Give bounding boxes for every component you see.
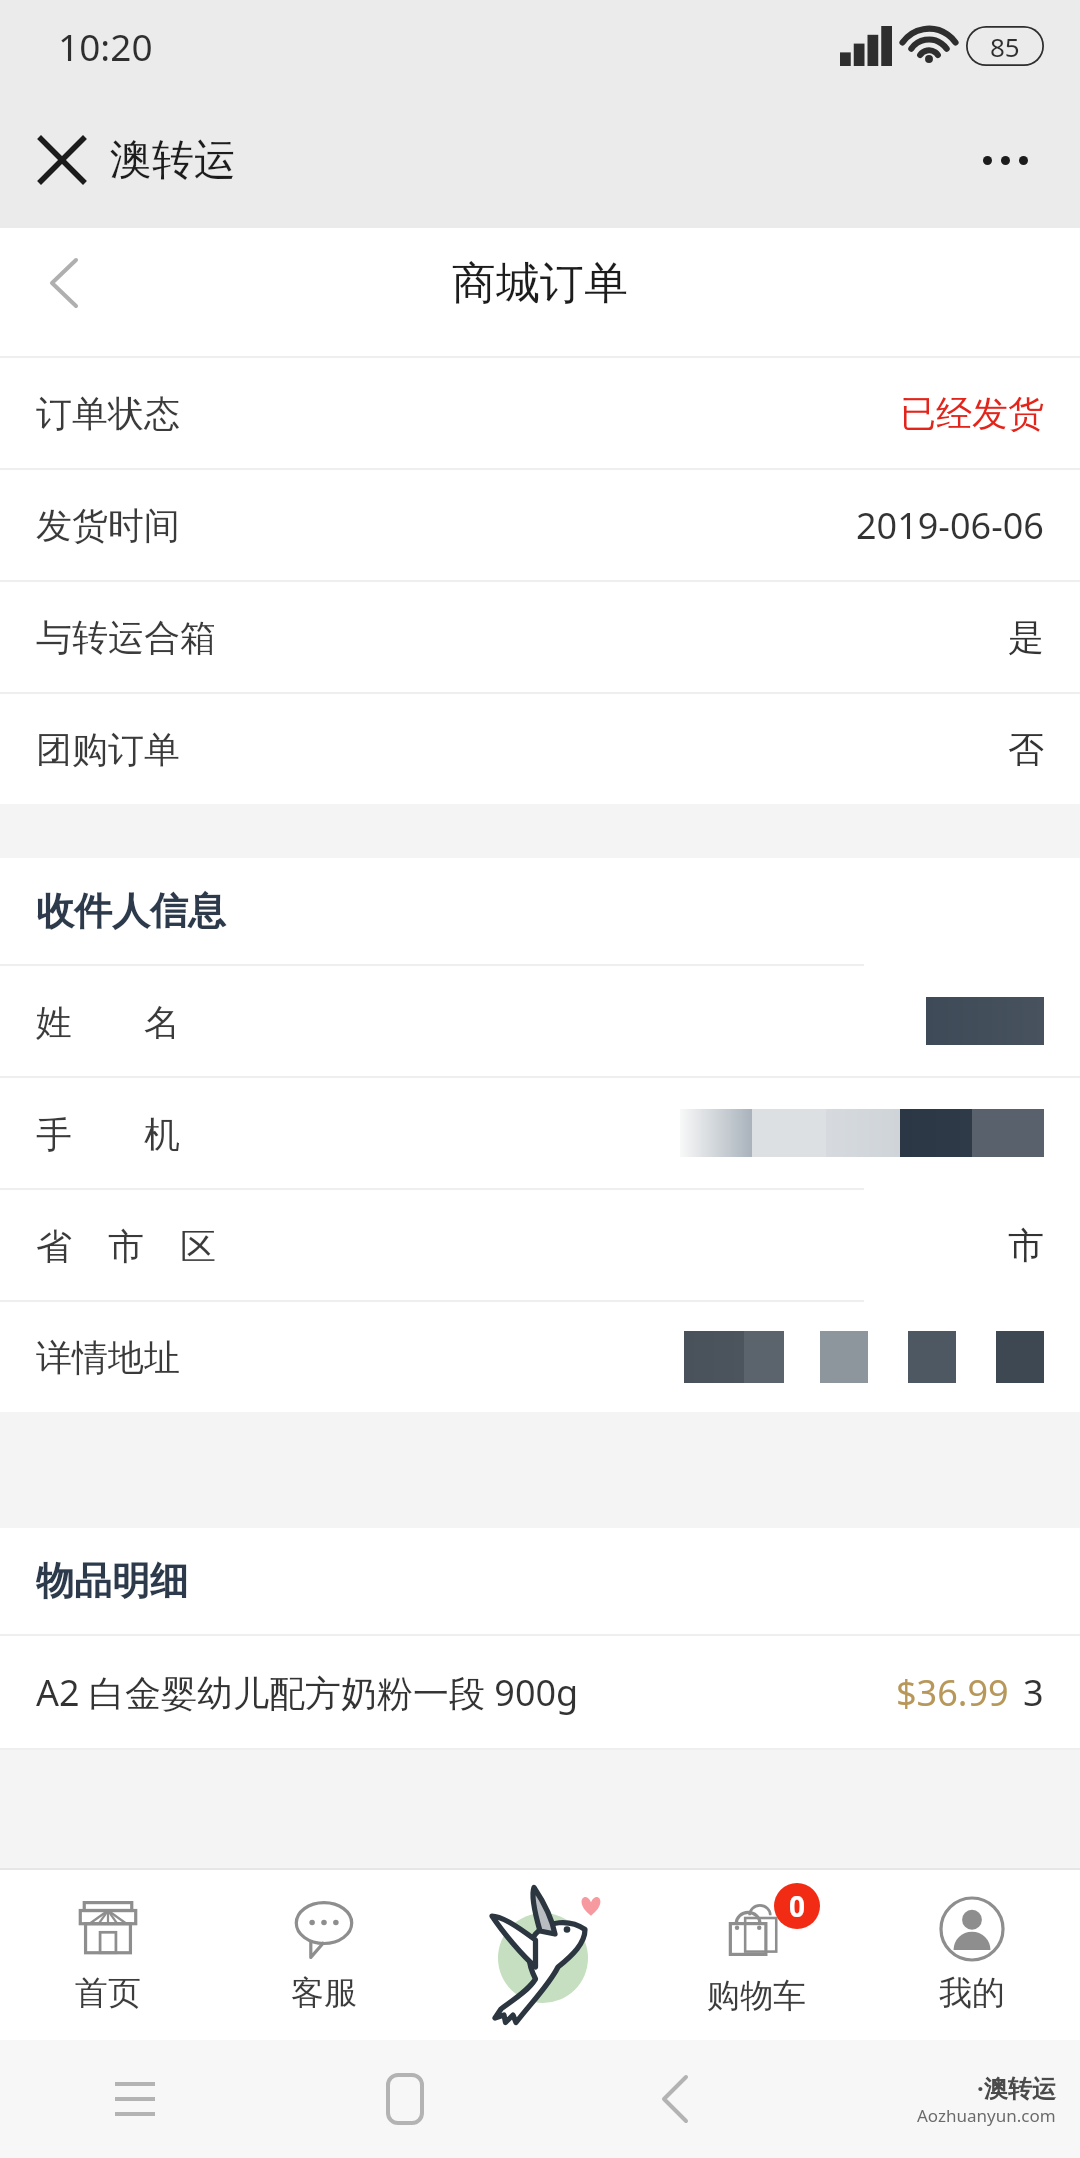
staticText: 客服 [291,1972,357,2014]
button[interactable]: Home [373,2067,437,2131]
staticText: 首页 [75,1972,141,2014]
button[interactable]: 团购订单 [36,694,1044,804]
button[interactable]: Back [643,2067,707,2131]
staticText: 姓 名 [36,997,180,1046]
button[interactable]: More options [960,115,1050,205]
staticText: 与转运合箱 [36,615,216,660]
staticText: 物品明细 [36,1557,188,1605]
button[interactable]: Close [22,120,102,200]
staticText: $36.99 [896,1668,1009,1717]
button[interactable]: 物品明细 [0,1528,1080,1634]
staticText: 发货时间 [36,503,180,548]
staticText: ·澳转运 [977,2071,1056,2104]
button[interactable]: 姓 名 [36,966,1044,1076]
staticText: 85 [990,29,1020,64]
staticText: 团购订单 [36,727,180,772]
staticText: 10:20 [58,21,153,71]
button[interactable]: 发货时间 [36,470,1044,580]
button[interactable]: 详情地址 [36,1302,1044,1412]
button[interactable]: 澳转运 [432,1870,648,2040]
staticText: 2019-06-06 [856,501,1044,550]
staticText: 0 [789,1887,806,1925]
staticText: 我的 [939,1972,1005,2014]
button[interactable]: 手 机 [36,1078,1044,1188]
button[interactable]: 订单状态 [36,358,1044,468]
staticText: 否 [1008,727,1044,772]
button[interactable]: 首页 [0,1870,216,2040]
staticText: 购物车 [707,1975,806,2017]
staticText: 收件人信息 [36,887,226,935]
button[interactable]: 我的 [864,1870,1080,2040]
button[interactable]: 收件人信息 [0,858,1080,964]
button[interactable]: 0 [648,1870,864,2040]
button[interactable]: A2 白金婴幼儿配方奶粉一段 900g [36,1636,1044,1748]
staticText: 已经发货 [900,391,1044,436]
staticText: 市 [1008,1223,1044,1268]
staticText: 省 市 区 [36,1221,216,1270]
button[interactable]: 客服 [216,1870,432,2040]
button[interactable]: Recents [103,2067,167,2131]
staticText: 商城订单 [452,256,628,311]
staticText: 3 [1023,1668,1044,1717]
staticText: 是 [1008,615,1044,660]
staticText: Aozhuanyun.com [917,2104,1056,2127]
staticText: 澳转运 [110,134,236,187]
staticText: 订单状态 [36,391,180,436]
button[interactable]: Back [26,245,102,321]
button[interactable]: 与转运合箱 [36,582,1044,692]
staticText: A2 白金婴幼儿配方奶粉一段 900g [36,1668,579,1717]
staticText: 详情地址 [36,1335,180,1380]
button[interactable]: 省 市 区 [36,1190,1044,1300]
staticText: 手 机 [36,1109,180,1158]
